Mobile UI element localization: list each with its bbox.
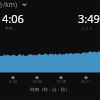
staticText: 6:32	[4, 79, 22, 84]
staticText: ベスト	[81, 26, 93, 31]
staticText: 平均	[5, 26, 13, 31]
staticText: 時間（時：分：秒）	[0, 87, 100, 93]
staticText: ペース (分/km)	[0, 0, 17, 9]
staticText: 13:06	[28, 79, 46, 84]
staticText: 19:38	[52, 79, 70, 84]
staticText: 3:49	[78, 11, 100, 26]
button[interactable]: Change metric	[20, 0, 29, 9]
staticText: 26:11	[77, 79, 95, 84]
staticText: 4:06	[2, 11, 24, 26]
